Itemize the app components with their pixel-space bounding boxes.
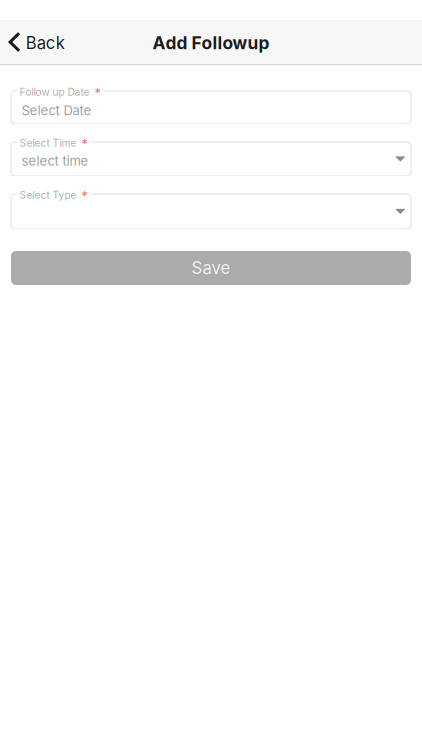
button[interactable]: Follow up Date, Select Date <box>11 91 411 124</box>
staticText: * <box>81 137 87 152</box>
staticText: Follow up Date <box>19 86 89 98</box>
staticText: * <box>81 189 87 204</box>
staticText: Select Time <box>19 137 76 149</box>
button[interactable]: Select Time, select time <box>11 142 411 176</box>
staticText: * <box>94 86 100 101</box>
staticText: Select Date <box>21 103 91 118</box>
staticText: Save <box>191 258 230 278</box>
button[interactable]: Back <box>0 20 75 64</box>
staticText: Add Followup <box>152 32 269 53</box>
staticText: Back <box>26 33 65 53</box>
button[interactable]: Select Type <box>11 194 411 229</box>
button[interactable]: Save <box>11 251 411 285</box>
staticText: select time <box>21 153 88 169</box>
staticText: Select Type <box>19 189 76 201</box>
